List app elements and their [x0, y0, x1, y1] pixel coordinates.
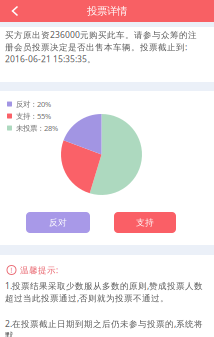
staticText: 1.投票结果采取少数服从多数的原则,赞成投票人数超过当此投票通过,否则就为投票不… [5, 280, 203, 304]
staticText: 反对：20% [16, 99, 51, 109]
staticText: 2.在投票截止日期到期之后仍未参与投票的,系统将默 [5, 318, 203, 337]
staticText: ! [10, 265, 12, 275]
staticText: 买方原出资236000元购买此车。请参与众筹的注册会员投票决定是否出售本车辆。投… [5, 29, 197, 65]
button[interactable]: 支持 [114, 212, 176, 233]
button[interactable]: 反对 [26, 212, 90, 233]
staticText: 支持 [136, 217, 154, 228]
staticText: 支持：55% [16, 111, 51, 121]
button[interactable]: Back [3, 0, 27, 22]
staticText: 投票详情 [87, 4, 127, 17]
staticText: 未投票：28% [16, 123, 58, 133]
staticText: 反对 [49, 217, 67, 228]
staticText: 温馨提示: [20, 264, 58, 276]
